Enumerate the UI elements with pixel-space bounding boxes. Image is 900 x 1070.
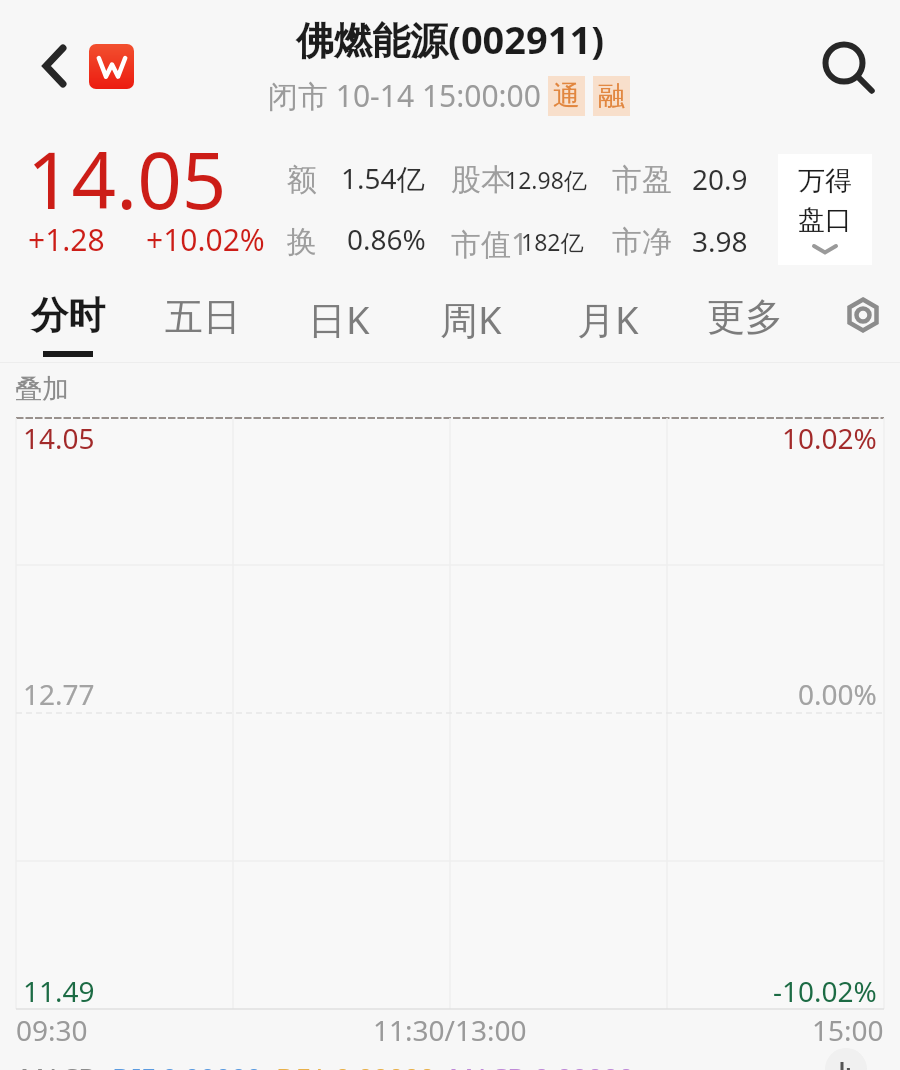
staticText: 市值1 [451,223,529,264]
button[interactable]: 万得 [778,154,872,265]
staticText: 分时 [31,292,105,339]
button[interactable]: 月K [542,282,674,358]
staticText: 14.05 [27,126,227,232]
button[interactable]: Chart settings [833,285,893,345]
staticText: 市盈 [612,161,672,199]
staticText: 万得 [798,164,852,198]
staticText: 闭市 10-14 15:00:00 [268,75,541,116]
staticText: 融 [598,79,625,113]
staticText: 3.98 [692,222,748,260]
button[interactable]: 周K [405,282,537,358]
button[interactable]: 更多 [679,282,811,358]
staticText: +1.28 [28,219,105,260]
staticText: 月K [577,293,639,345]
staticText: -10.02% [773,972,877,1010]
staticText: 14.05 [23,419,95,457]
staticText: 盘口 [798,203,852,237]
staticText: 0.00% [798,675,877,713]
staticText: 股本 [451,161,511,199]
staticText: MACD [20,1060,98,1070]
staticText: 11:30/13:00 [373,1011,527,1049]
staticText: 日K [308,293,370,345]
staticText: 市净 [612,223,672,261]
staticText: 换 [287,223,317,261]
staticText: MACD 0.00000 [449,1060,634,1070]
staticText: 通 [553,79,580,113]
staticText: 10.02% [782,419,877,457]
staticText: 五日 [165,293,241,341]
button[interactable]: Expand chart [825,1048,867,1070]
button[interactable]: Wind [89,44,134,89]
staticText: 09:30 [16,1011,88,1049]
staticText: 182亿 [521,226,584,257]
staticText: DIF 0.00000 [112,1060,262,1070]
button[interactable]: Back [26,34,86,94]
staticText: 周K [440,293,502,345]
staticText: 1.54亿 [341,159,425,197]
staticText: 更多 [707,293,783,341]
staticText: DEA 0.00000 [276,1060,435,1070]
staticText: 叠加 [15,372,69,406]
button[interactable]: 日K [273,282,405,358]
button[interactable]: 叠加 [9,368,75,408]
staticText: 12.77 [23,675,95,713]
staticText: 20.9 [692,160,748,198]
staticText: +10.02% [146,219,265,260]
staticText: 12.98亿 [505,164,587,195]
button[interactable]: 分时 [2,282,134,358]
staticText: 0.86% [347,220,426,258]
staticText: 佛燃能源(002911) [296,13,605,65]
button[interactable]: 五日 [137,282,269,358]
staticText: 额 [287,161,317,199]
staticText: 15:00 [812,1011,884,1049]
button[interactable]: Search [808,26,884,102]
staticText: 11.49 [23,972,95,1010]
